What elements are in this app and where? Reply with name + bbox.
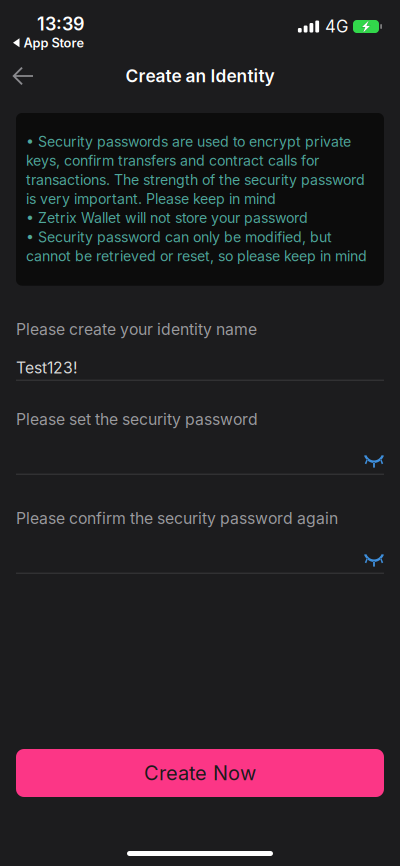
staticText: 4G <box>325 16 348 37</box>
staticText: 13:39 <box>37 13 85 35</box>
staticText: Please create your identity name <box>16 320 257 339</box>
button[interactable]: Show password <box>350 451 384 473</box>
staticText: Please set the security password <box>16 410 258 429</box>
staticText: App Store <box>23 35 84 50</box>
button[interactable]: App Store <box>0 28 84 49</box>
staticText: • Security passwords are used to encrypt… <box>26 133 367 265</box>
staticText: Create an Identity <box>125 65 274 86</box>
staticText: Test123! <box>16 358 78 377</box>
staticText: Create Now <box>144 761 256 785</box>
button[interactable]: Create Now <box>16 749 384 797</box>
button[interactable]: Show password <box>350 550 384 572</box>
button[interactable]: Back <box>0 56 46 96</box>
staticText: Please confirm the security password aga… <box>16 509 338 528</box>
